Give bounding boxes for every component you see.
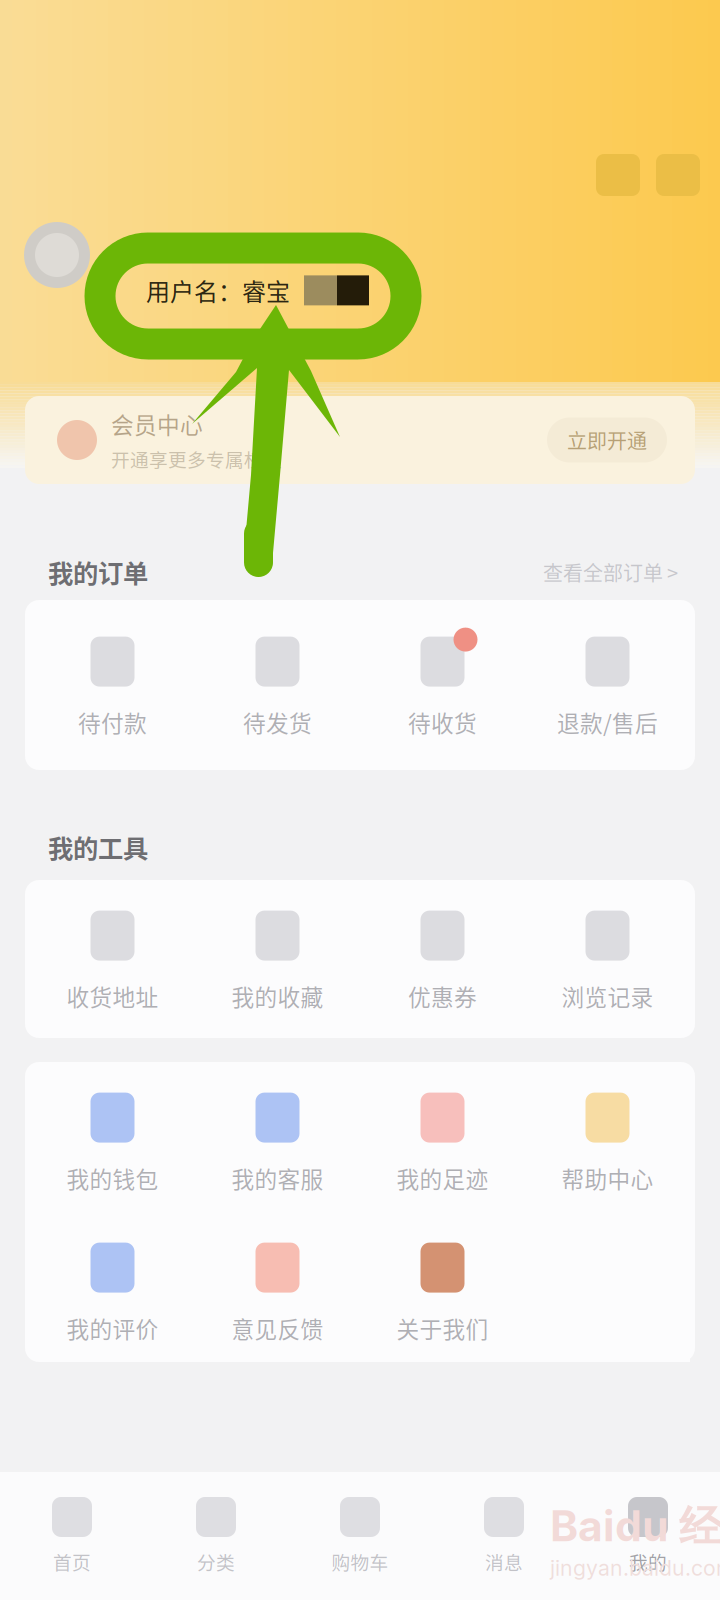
button[interactable]: 查看全部订单 >: [543, 557, 678, 586]
staticText: 收货地址: [66, 980, 158, 1012]
staticText: 我的: [629, 1548, 667, 1575]
staticText: 首页: [53, 1548, 91, 1575]
staticText: 待收货: [408, 706, 477, 738]
button[interactable]: 退款/售后: [525, 621, 690, 749]
button[interactable]: 收货地址: [30, 895, 195, 1023]
staticText: 我的工具: [48, 829, 148, 865]
button[interactable]: 帮助中心: [525, 1077, 690, 1205]
staticText: 我的客服: [231, 1162, 323, 1194]
staticText: 浏览记录: [561, 980, 653, 1012]
button[interactable]: 浏览记录: [525, 895, 690, 1023]
staticText: 查看全部订单 >: [543, 557, 678, 586]
staticText: 开通享更多专属权益: [111, 445, 282, 472]
button[interactable]: 优惠券: [360, 895, 525, 1023]
staticText: 关于我们: [396, 1312, 488, 1344]
staticText: Baidu 经验: [550, 1500, 720, 1554]
staticText: 优惠券: [408, 980, 477, 1012]
button[interactable]: 消息: [432, 1486, 576, 1586]
staticText: 用户名：睿宝: [146, 273, 290, 308]
staticText: 购物车: [331, 1548, 388, 1575]
button[interactable]: 我的收藏: [195, 895, 360, 1023]
button[interactable]: 待收货: [360, 621, 525, 749]
button[interactable]: 会员中心: [25, 396, 695, 484]
button[interactable]: 我的足迹: [360, 1077, 525, 1205]
button[interactable]: 意见反馈: [195, 1227, 360, 1355]
button[interactable]: 我的评价: [30, 1227, 195, 1355]
staticText: 待付款: [78, 706, 147, 738]
staticText: 帮助中心: [561, 1162, 653, 1194]
staticText: 我的评价: [66, 1312, 158, 1344]
staticText: 退款/售后: [557, 706, 658, 738]
button[interactable]: 待付款: [30, 621, 195, 749]
button[interactable]: 头像: [24, 222, 90, 288]
staticText: 待发货: [243, 706, 312, 738]
button[interactable]: 购物车: [288, 1486, 432, 1586]
button[interactable]: 我的: [576, 1486, 720, 1586]
staticText: 我的收藏: [231, 980, 323, 1012]
button[interactable]: 分类: [144, 1486, 288, 1586]
staticText: jingyan.baidu.com: [550, 1555, 720, 1581]
staticText: 意见反馈: [231, 1312, 323, 1344]
button[interactable]: 我的客服: [195, 1077, 360, 1205]
staticText: 我的钱包: [66, 1162, 158, 1194]
button[interactable]: 待发货: [195, 621, 360, 749]
button[interactable]: 首页: [0, 1486, 144, 1586]
staticText: 分类: [197, 1548, 235, 1575]
staticText: 消息: [485, 1548, 523, 1575]
staticText: 会员中心: [111, 408, 203, 440]
button[interactable]: 关于我们: [360, 1227, 525, 1355]
staticText: 立即开通: [567, 425, 647, 454]
staticText: 我的订单: [48, 554, 148, 590]
staticText: 我的足迹: [396, 1162, 488, 1194]
button[interactable]: 我的钱包: [30, 1077, 195, 1205]
